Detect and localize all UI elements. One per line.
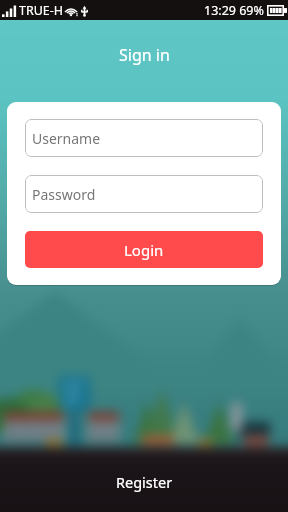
staticText: TRUE-H <box>19 2 64 19</box>
staticText: Sign in <box>119 44 170 66</box>
staticText: Register <box>116 472 173 492</box>
staticText: Password <box>32 185 96 204</box>
staticText: Username <box>32 129 101 148</box>
staticText: Login <box>124 240 164 260</box>
button[interactable]: Register <box>0 452 288 512</box>
button[interactable]: Login <box>25 231 263 268</box>
button[interactable]: Password <box>25 175 263 213</box>
button[interactable]: Username <box>25 119 263 157</box>
staticText: 13:29 69% <box>204 2 264 19</box>
